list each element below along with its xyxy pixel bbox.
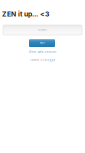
staticText: Blogger xyxy=(44,58,55,62)
staticText: ZEN it up... <3 xyxy=(2,10,49,18)
staticText: Home xyxy=(39,42,44,44)
staticText: No posts. xyxy=(37,28,47,31)
button[interactable]: Home xyxy=(29,39,55,47)
staticText: View web version xyxy=(28,50,56,54)
button[interactable]: View web version xyxy=(0,50,85,54)
staticText: Powered by xyxy=(30,58,44,62)
